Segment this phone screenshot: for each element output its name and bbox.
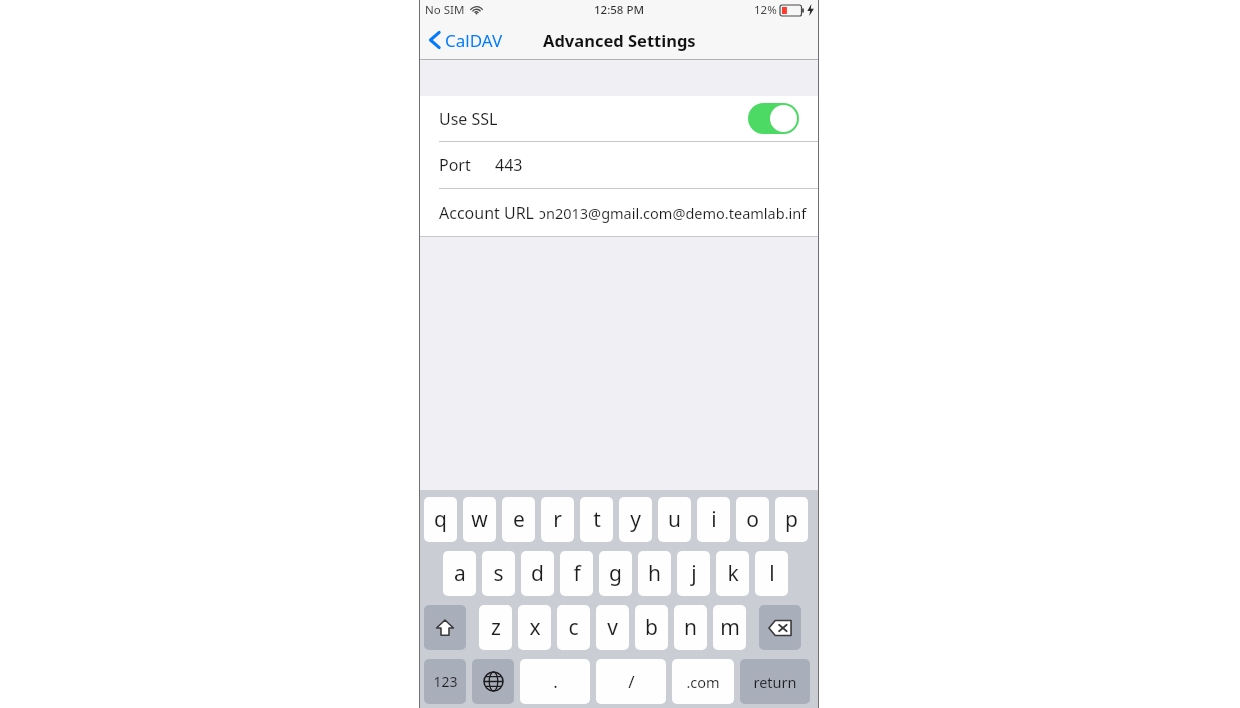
- staticText: n: [684, 613, 697, 642]
- staticText: return: [753, 672, 797, 692]
- button[interactable]: b: [635, 605, 668, 650]
- staticText: r: [553, 505, 562, 534]
- button[interactable]: i: [697, 497, 730, 542]
- button[interactable]: v: [596, 605, 629, 650]
- button[interactable]: Backspace: [759, 605, 801, 650]
- button[interactable]: o: [736, 497, 769, 542]
- staticText: e: [513, 505, 525, 534]
- staticText: u: [668, 505, 681, 534]
- button[interactable]: u: [658, 497, 691, 542]
- staticText: v: [607, 613, 618, 642]
- button[interactable]: q: [424, 497, 457, 542]
- button[interactable]: a: [443, 551, 476, 596]
- button[interactable]: z: [479, 605, 512, 650]
- button[interactable]: p: [775, 497, 808, 542]
- staticText: c: [568, 613, 579, 642]
- staticText: 123: [433, 672, 458, 691]
- staticText: h: [648, 559, 661, 588]
- staticText: q: [434, 505, 447, 534]
- staticText: f: [573, 559, 581, 588]
- button[interactable]: r: [541, 497, 574, 542]
- button[interactable]: k: [716, 551, 749, 596]
- staticText: j: [691, 559, 697, 588]
- staticText: i: [711, 505, 717, 534]
- button[interactable]: f: [560, 551, 593, 596]
- staticText: l: [769, 559, 775, 588]
- staticText: w: [471, 505, 488, 534]
- button[interactable]: 123: [424, 659, 466, 704]
- button[interactable]: w: [463, 497, 496, 542]
- button[interactable]: s: [482, 551, 515, 596]
- button[interactable]: c: [557, 605, 590, 650]
- button[interactable]: n: [674, 605, 707, 650]
- staticText: x: [529, 613, 541, 642]
- staticText: d: [531, 559, 544, 588]
- button[interactable]: Account URL: [420, 189, 818, 236]
- staticText: b: [645, 613, 658, 642]
- button[interactable]: Shift: [424, 605, 466, 650]
- staticText: 12:58 PM: [594, 2, 645, 18]
- staticText: 443: [495, 154, 523, 176]
- button[interactable]: Use SSL toggle: [748, 103, 799, 134]
- button[interactable]: m: [713, 605, 746, 650]
- button[interactable]: d: [521, 551, 554, 596]
- staticText: t: [593, 505, 601, 534]
- button[interactable]: CalDAV: [420, 20, 511, 60]
- staticText: CalDAV: [445, 29, 503, 52]
- button[interactable]: x: [518, 605, 551, 650]
- staticText: k: [727, 559, 739, 588]
- button[interactable]: Port: [420, 142, 818, 188]
- button[interactable]: return: [740, 659, 810, 704]
- button[interactable]: .: [520, 659, 590, 704]
- button[interactable]: Use SSL: [420, 96, 818, 141]
- staticText: .: [553, 670, 558, 693]
- staticText: Account URL: [439, 202, 535, 224]
- button[interactable]: l: [755, 551, 788, 596]
- button[interactable]: t: [580, 497, 613, 542]
- staticText: Port: [439, 154, 471, 176]
- staticText: p: [785, 505, 798, 534]
- button[interactable]: .com: [672, 659, 734, 704]
- staticText: g: [609, 559, 622, 588]
- staticText: Use SSL: [439, 108, 498, 130]
- staticText: 12%: [754, 2, 777, 18]
- staticText: z: [491, 613, 501, 642]
- button[interactable]: j: [677, 551, 710, 596]
- staticText: o: [746, 505, 759, 534]
- button[interactable]: h: [638, 551, 671, 596]
- staticText: .com: [686, 672, 720, 692]
- staticText: No SIM: [425, 2, 465, 18]
- staticText: s: [493, 559, 504, 588]
- staticText: /: [628, 670, 635, 693]
- staticText: Advanced Settings: [543, 29, 696, 51]
- staticText: ɔn2013@gmail.com@demo.teamlab.info/: [539, 203, 814, 223]
- button[interactable]: y: [619, 497, 652, 542]
- staticText: m: [720, 613, 740, 642]
- button[interactable]: e: [502, 497, 535, 542]
- staticText: a: [454, 559, 466, 588]
- button[interactable]: g: [599, 551, 632, 596]
- button[interactable]: /: [596, 659, 666, 704]
- button[interactable]: Switch keyboard: [472, 659, 514, 704]
- staticText: y: [630, 505, 641, 534]
